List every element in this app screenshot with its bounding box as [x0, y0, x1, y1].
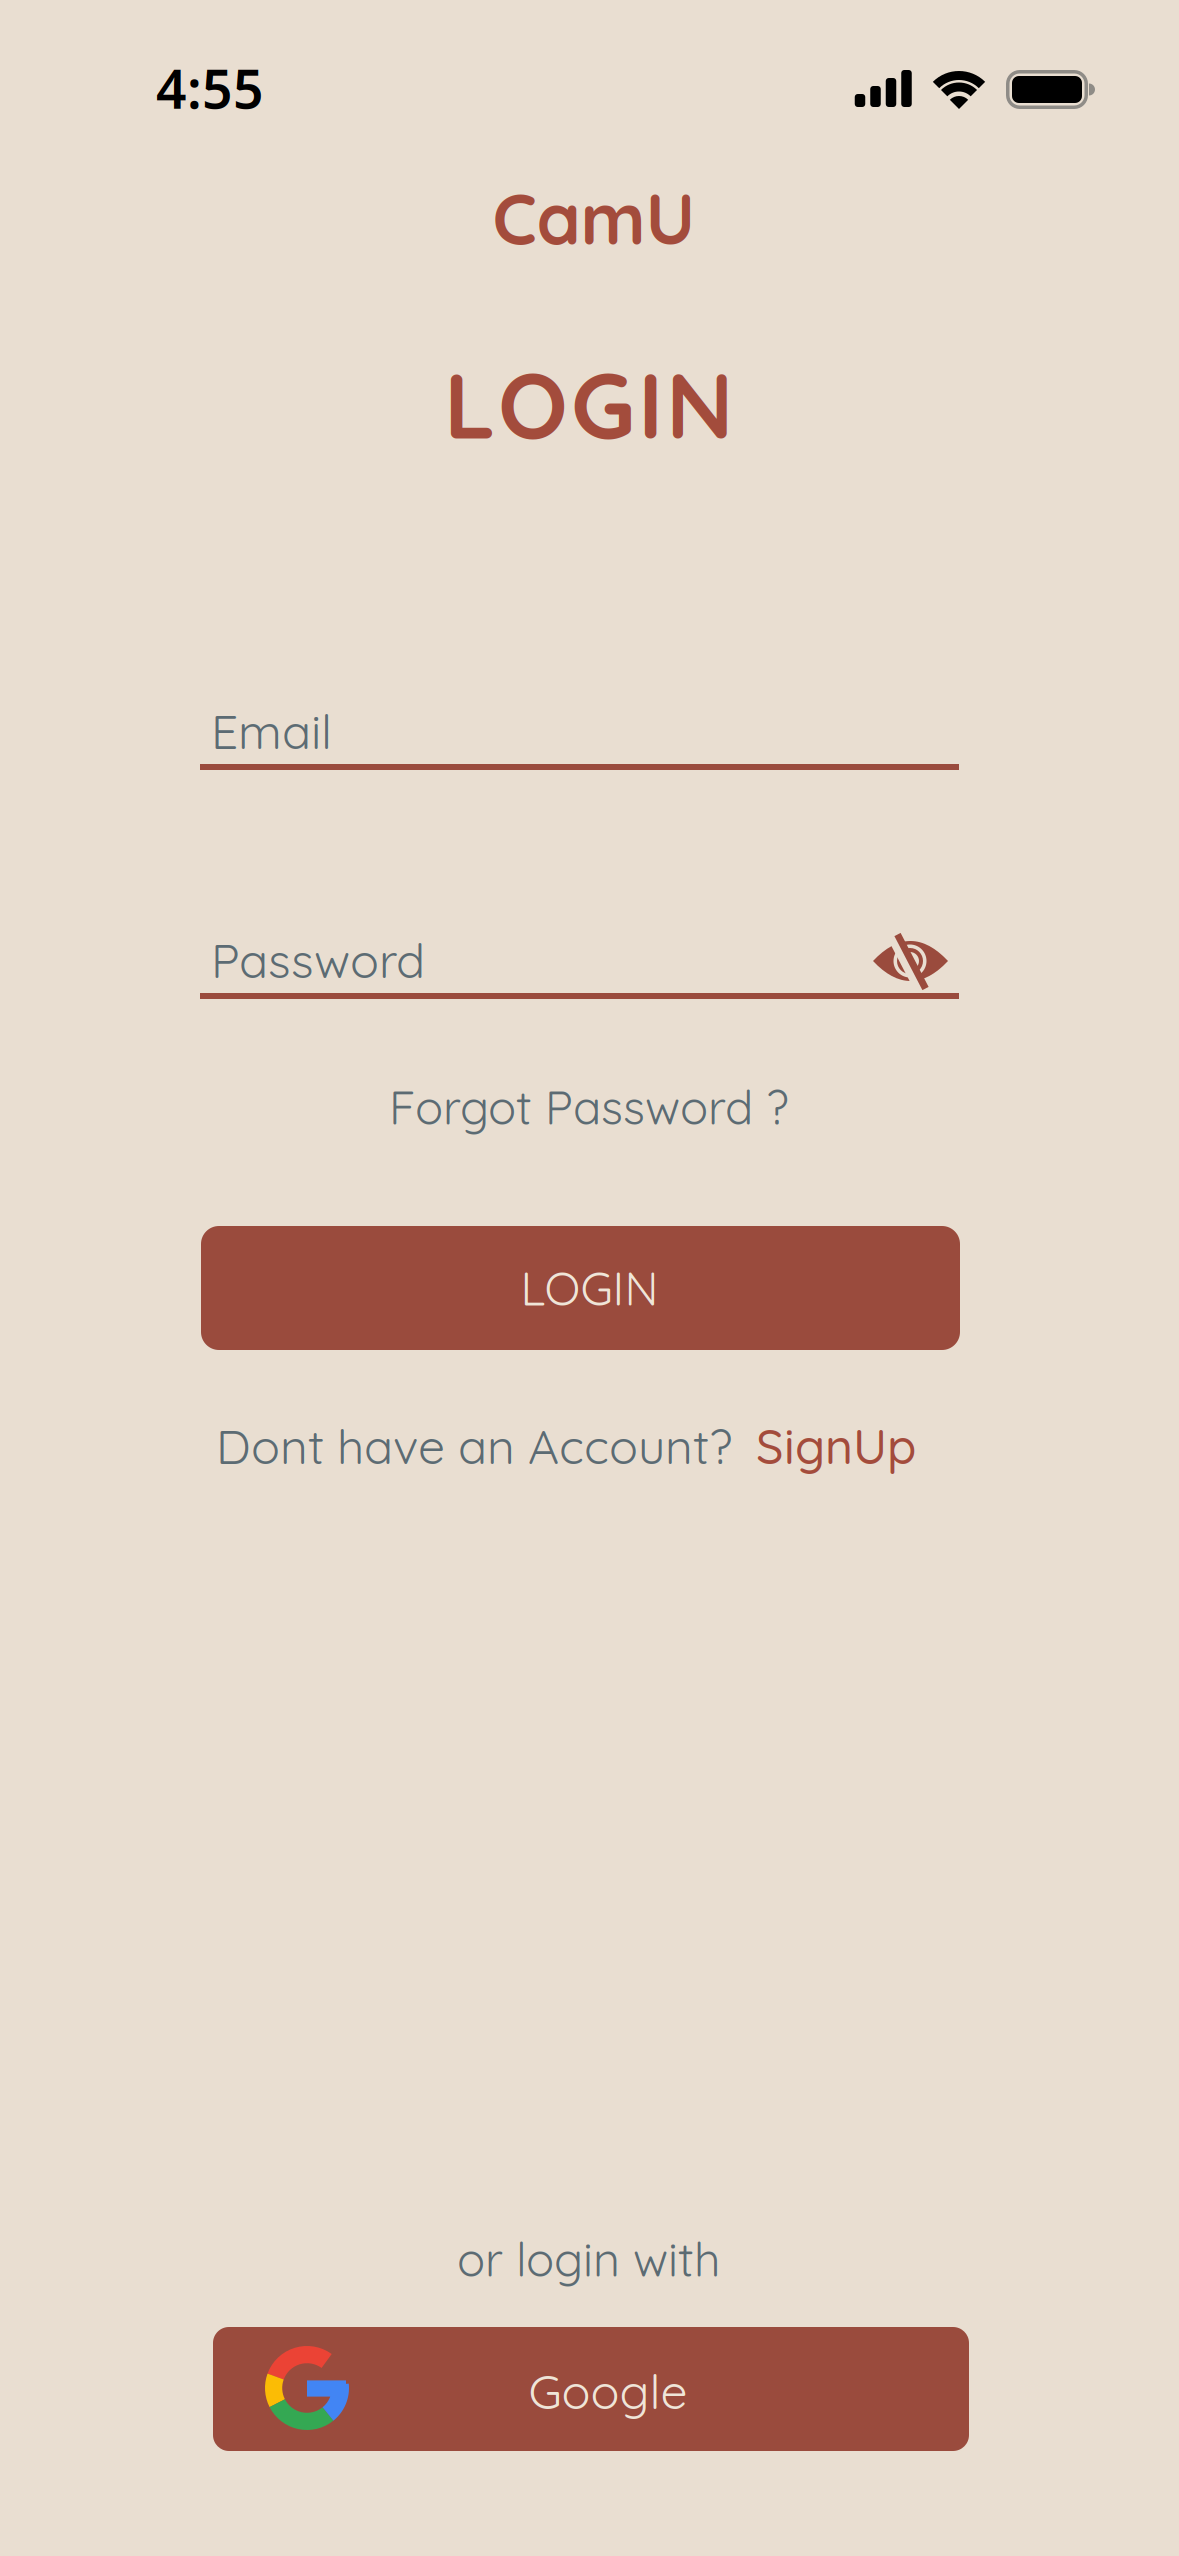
- staticText: Password: [211, 930, 425, 990]
- button[interactable]: Password: [200, 914, 959, 1014]
- button[interactable]: Google: [213, 2327, 969, 2451]
- staticText: 4:55: [156, 53, 264, 123]
- button[interactable]: SignUp: [756, 1416, 916, 1476]
- staticText: Email: [211, 701, 332, 761]
- button[interactable]: Email: [200, 685, 959, 785]
- button[interactable]: Forgot Password ?: [389, 1078, 789, 1136]
- staticText: or login with: [457, 2230, 721, 2288]
- staticText: Forgot Password ?: [389, 1078, 789, 1136]
- button[interactable]: Show password: [862, 925, 958, 997]
- staticText: Dont have an Account?: [216, 1416, 732, 1476]
- staticText: SignUp: [756, 1416, 916, 1476]
- staticText: LOGIN: [444, 346, 734, 461]
- staticText: Google: [528, 2361, 687, 2421]
- staticText: LOGIN: [520, 1259, 658, 1317]
- staticText: CamU: [492, 174, 695, 262]
- button[interactable]: LOGIN: [201, 1226, 960, 1350]
